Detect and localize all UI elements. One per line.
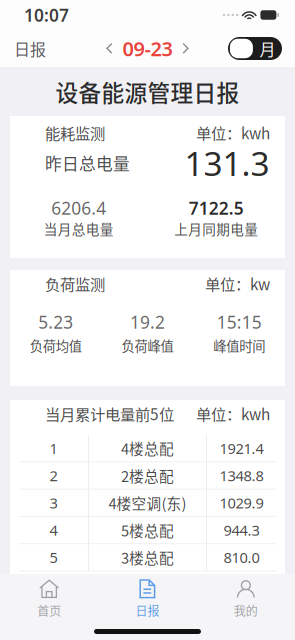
staticText: 日报 (14, 37, 46, 60)
staticText: 15:15 (217, 310, 262, 333)
staticText: 月 (259, 37, 275, 60)
staticText: 2 (49, 466, 57, 485)
staticText: 能耗监测 (45, 121, 105, 144)
staticText: 单位：kwh (196, 402, 270, 425)
button[interactable]: 日报 (98, 579, 197, 619)
staticText: 负荷峰值 (121, 336, 173, 355)
staticText: 日报 (135, 602, 159, 619)
staticText: 设备能源管理日报 (55, 75, 239, 108)
staticText: 峰值时间 (213, 336, 265, 355)
staticText: 6206.4 (51, 196, 106, 219)
button[interactable]: 我的 (197, 579, 295, 619)
staticText: 944.3 (223, 520, 259, 540)
button[interactable]: Previous day (97, 36, 121, 60)
staticText: 4楼空调(东) (108, 492, 186, 513)
staticText: 4楼总配 (121, 438, 174, 459)
staticText: 1029.9 (219, 493, 263, 513)
staticText: 19.2 (130, 310, 165, 333)
staticText: 首页 (37, 602, 61, 619)
button[interactable]: Switch to month (228, 37, 282, 60)
staticText: 1921.4 (219, 438, 263, 458)
staticText: 5楼总配 (121, 519, 174, 541)
staticText: 09-23 (122, 35, 172, 62)
staticText: 负荷监测 (45, 272, 105, 295)
staticText: 5 (49, 548, 57, 567)
staticText: 我的 (234, 602, 258, 619)
staticText: 3楼总配 (121, 547, 174, 568)
button[interactable]: 首页 (0, 579, 98, 619)
staticText: 负荷均值 (30, 336, 82, 355)
staticText: 4 (49, 520, 57, 540)
staticText: 10:07 (24, 3, 69, 26)
staticText: 5.23 (38, 310, 73, 333)
staticText: 昨日总电量 (45, 151, 130, 175)
button[interactable]: Next day (173, 36, 197, 60)
staticText: 810.0 (223, 548, 259, 567)
staticText: 单位：kw (205, 272, 270, 295)
staticText: 3 (49, 493, 57, 513)
staticText: 1 (49, 438, 57, 458)
staticText: 上月同期电量 (174, 219, 258, 238)
staticText: 当月累计电量前5位 (45, 402, 174, 425)
staticText: 131.3 (184, 141, 269, 185)
staticText: 2楼总配 (121, 465, 174, 486)
staticText: 当月总电量 (44, 219, 114, 238)
staticText: 7122.5 (189, 196, 244, 219)
staticText: 单位：kwh (196, 121, 270, 144)
staticText: 1348.8 (219, 466, 263, 485)
